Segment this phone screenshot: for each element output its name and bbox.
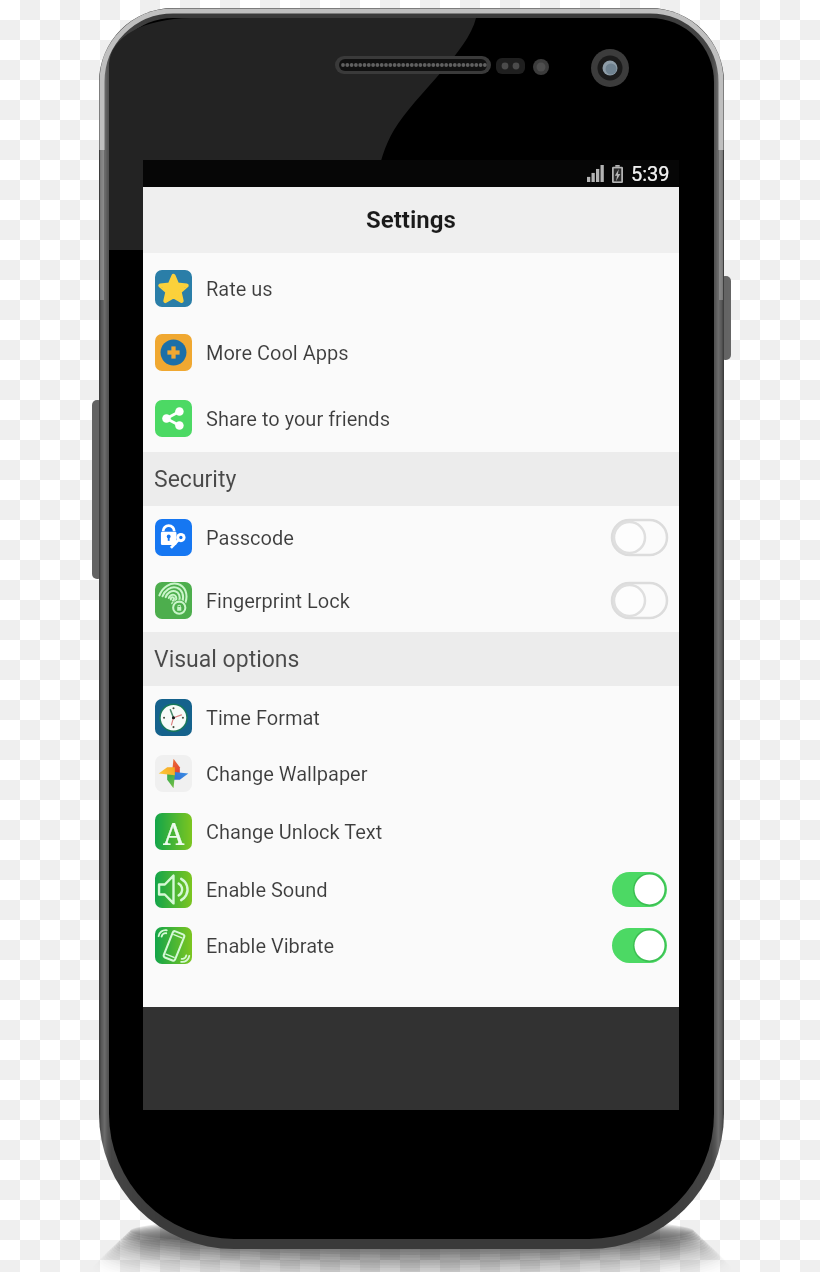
button[interactable]: Toggle on xyxy=(612,872,667,907)
staticText: Time Format xyxy=(206,706,320,729)
button[interactable]: Enable Sound xyxy=(143,861,679,917)
button[interactable]: Fingerprint Lock xyxy=(143,569,679,632)
button[interactable]: More Cool Apps xyxy=(143,320,679,384)
button[interactable]: A xyxy=(143,801,679,861)
staticText: A xyxy=(163,813,185,850)
staticText: 5:39 xyxy=(631,162,670,185)
staticText: Passcode xyxy=(206,526,294,549)
staticText: Change Unlock Text xyxy=(206,820,383,843)
staticText: Security xyxy=(154,466,237,493)
button[interactable]: Change Wallpaper xyxy=(143,745,679,801)
button[interactable]: Enable Vibrate xyxy=(143,917,679,973)
staticText: Enable Vibrate xyxy=(206,934,335,957)
staticText: Rate us xyxy=(206,277,273,300)
button[interactable]: Time Format xyxy=(143,689,679,745)
button[interactable]: Rate us xyxy=(143,256,679,320)
staticText: Visual options xyxy=(154,646,300,673)
button[interactable]: Share to your friends xyxy=(143,384,679,452)
button[interactable]: Toggle on xyxy=(612,928,667,963)
staticText: More Cool Apps xyxy=(206,341,349,364)
staticText: Change Wallpaper xyxy=(206,762,368,785)
button[interactable]: Passcode xyxy=(143,506,679,569)
staticText: Enable Sound xyxy=(206,878,328,901)
staticText: Fingerprint Lock xyxy=(206,589,350,612)
button[interactable]: Toggle off xyxy=(612,520,667,555)
staticText: Settings xyxy=(366,206,456,234)
button[interactable]: Toggle off xyxy=(612,583,667,618)
staticText: Share to your friends xyxy=(206,407,390,430)
